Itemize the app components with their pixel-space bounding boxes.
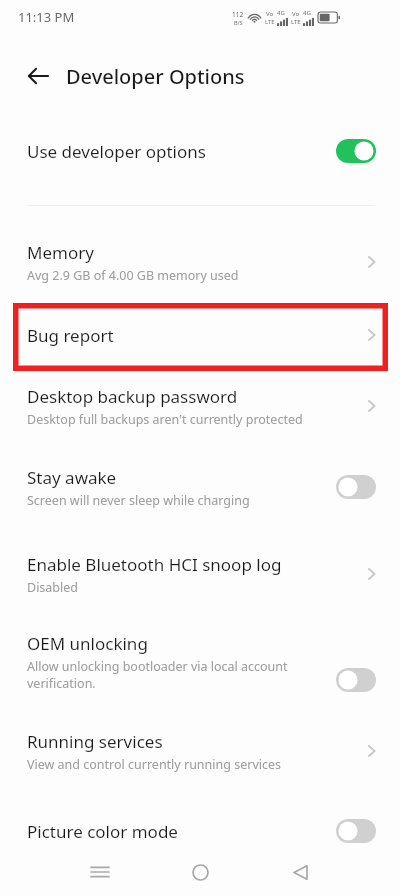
button[interactable]: Home xyxy=(176,848,224,896)
staticText: Bug report xyxy=(27,324,114,347)
staticText: Vo xyxy=(292,10,300,18)
staticText: LTE xyxy=(265,18,275,26)
button[interactable]: Memory xyxy=(0,238,400,286)
staticText: Desktop backup password xyxy=(27,385,238,408)
button[interactable]: Back xyxy=(18,56,58,96)
staticText: Enable Bluetooth HCI snoop log xyxy=(27,553,282,576)
button[interactable]: OEM unlocking xyxy=(0,631,400,693)
staticText: Vo xyxy=(266,10,274,18)
staticText: Memory xyxy=(27,241,94,264)
staticText: Screen will never sleep while charging xyxy=(27,492,250,509)
staticText: Developer Options xyxy=(66,63,245,90)
staticText: 11:13 PM xyxy=(18,8,75,26)
staticText: B/S xyxy=(234,19,243,26)
button[interactable]: Desktop backup password xyxy=(0,382,400,430)
button[interactable]: Enable Bluetooth HCI snoop log xyxy=(0,550,400,598)
button[interactable]: Picture color mode xyxy=(0,811,400,851)
button[interactable]: Bug report xyxy=(0,320,400,350)
staticText: 4G xyxy=(277,9,285,17)
button[interactable]: Toggle off xyxy=(336,819,376,843)
staticText: Avg 2.9 GB of 4.00 GB memory used xyxy=(27,267,239,284)
button[interactable]: Toggle on xyxy=(336,139,376,163)
staticText: LTE xyxy=(291,18,301,26)
button[interactable]: Toggle off xyxy=(336,668,376,692)
button[interactable]: Back xyxy=(276,848,324,896)
staticText: Allow unlocking bootloader via local acc… xyxy=(27,658,288,692)
staticText: OEM unlocking xyxy=(27,632,148,655)
button[interactable]: Stay awake xyxy=(0,463,400,511)
button[interactable]: Running services xyxy=(0,727,400,775)
staticText: Picture color mode xyxy=(27,820,178,843)
staticText: 112 xyxy=(232,10,244,19)
staticText: View and control currently running servi… xyxy=(27,756,282,773)
button[interactable]: Recent apps xyxy=(76,848,124,896)
staticText: Desktop full backups aren't currently pr… xyxy=(27,411,303,428)
staticText: 4G xyxy=(303,9,311,17)
staticText: Use developer options xyxy=(27,140,206,163)
staticText: Running services xyxy=(27,730,163,753)
button[interactable]: Use developer options xyxy=(0,128,400,174)
button[interactable]: Toggle off xyxy=(336,475,376,499)
staticText: Stay awake xyxy=(27,466,117,489)
staticText: Disabled xyxy=(27,579,79,596)
